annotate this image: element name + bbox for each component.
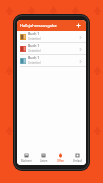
button[interactable]: Bücherei: [17, 151, 35, 165]
staticText: Untertitel: [28, 61, 41, 65]
button[interactable]: Verlauf: [69, 151, 86, 165]
button[interactable]: Open: [77, 34, 83, 40]
staticText: Listen: [40, 159, 48, 163]
button[interactable]: Open: [77, 58, 83, 64]
staticText: Buch 1: [28, 55, 40, 60]
button[interactable]: Add: [74, 21, 83, 30]
button[interactable]: Buch 1: [17, 43, 86, 54]
staticText: Halbjahresausgabe: [20, 23, 57, 28]
staticText: Buch 1: [28, 31, 40, 36]
button[interactable]: Buch 1: [17, 31, 86, 42]
button[interactable]: Buch 1: [17, 55, 86, 66]
staticText: Verlauf: [73, 159, 82, 163]
button[interactable]: Listen: [35, 151, 52, 165]
staticText: Buch 1: [28, 43, 40, 48]
staticText: Untertitel: [28, 49, 41, 53]
button[interactable]: Open: [77, 46, 83, 52]
button[interactable]: Offen: [52, 151, 69, 165]
staticText: Offen: [57, 159, 64, 163]
staticText: Bücherei: [21, 159, 32, 163]
staticText: Untertitel: [28, 37, 41, 41]
